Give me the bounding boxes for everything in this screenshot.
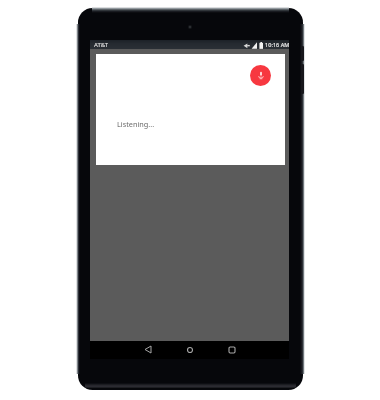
staticText: 10:16 AM bbox=[265, 41, 290, 49]
button[interactable]: Microphone, tap to speak bbox=[250, 65, 271, 86]
staticText: Listening... bbox=[117, 119, 155, 129]
button[interactable]: Back bbox=[138, 341, 157, 358]
button[interactable]: Recent apps bbox=[222, 341, 241, 358]
button[interactable]: Home bbox=[180, 341, 199, 358]
button[interactable]: AT&T bbox=[90, 40, 289, 49]
staticText: AT&T bbox=[94, 41, 108, 49]
